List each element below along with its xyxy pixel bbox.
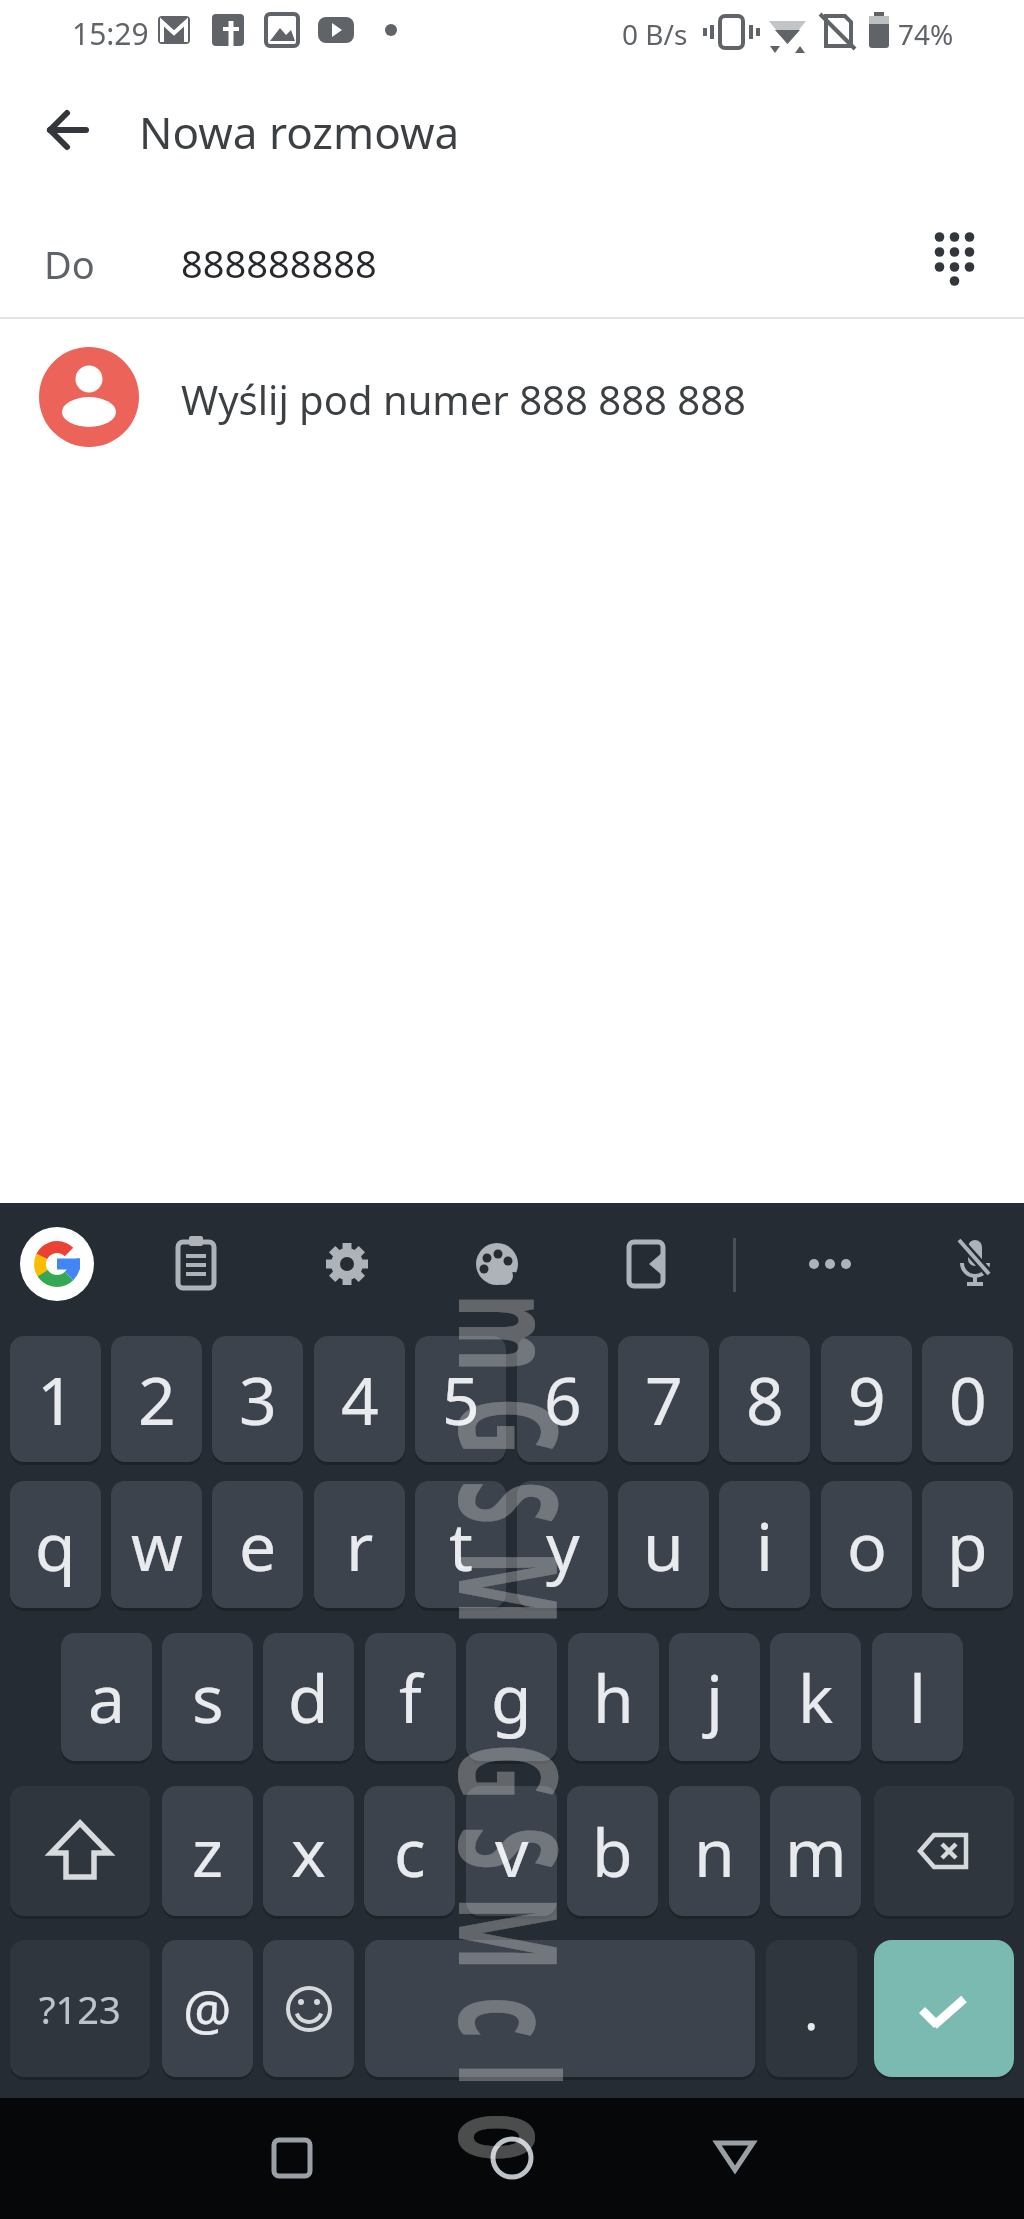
button[interactable]: [935, 1224, 1015, 1304]
button[interactable]: v: [466, 1786, 557, 1916]
button[interactable]: l: [872, 1633, 963, 1761]
staticText: q: [35, 1500, 76, 1590]
staticText: 1: [37, 1354, 75, 1444]
button[interactable]: j: [669, 1633, 760, 1761]
button[interactable]: u: [618, 1481, 709, 1608]
staticText: 9: [848, 1354, 886, 1444]
button[interactable]: 6: [517, 1336, 608, 1462]
staticText: f: [399, 1652, 422, 1742]
button[interactable]: k: [770, 1633, 861, 1761]
button[interactable]: .: [766, 1940, 857, 2077]
button[interactable]: r: [314, 1481, 405, 1608]
button[interactable]: [156, 1224, 236, 1304]
button[interactable]: 9: [821, 1336, 912, 1462]
button[interactable]: x: [263, 1786, 354, 1916]
button[interactable]: m: [770, 1786, 861, 1916]
button[interactable]: [252, 2118, 332, 2198]
button[interactable]: h: [568, 1633, 659, 1761]
button[interactable]: 0: [922, 1336, 1013, 1462]
staticText: ?123: [39, 1983, 121, 2035]
button[interactable]: y: [517, 1481, 608, 1608]
button[interactable]: 4: [314, 1336, 405, 1462]
button[interactable]: 8: [719, 1336, 810, 1462]
button[interactable]: s: [162, 1633, 253, 1761]
button[interactable]: w: [111, 1481, 202, 1608]
staticText: e: [239, 1500, 277, 1590]
button[interactable]: c: [364, 1786, 455, 1916]
staticText: Nowa rozmowa: [139, 102, 460, 162]
staticText: l: [909, 1652, 927, 1742]
button[interactable]: q: [10, 1481, 101, 1608]
staticText: m: [785, 1806, 847, 1896]
button[interactable]: [790, 1224, 870, 1304]
button[interactable]: ?123: [10, 1940, 150, 2077]
staticText: s: [192, 1652, 224, 1742]
button[interactable]: [900, 205, 1008, 313]
button[interactable]: [263, 1940, 354, 2077]
staticText: y: [546, 1500, 580, 1590]
button[interactable]: [10, 1786, 150, 1916]
staticText: k: [798, 1652, 834, 1742]
staticText: i: [756, 1500, 774, 1590]
staticText: v: [495, 1806, 529, 1896]
button[interactable]: z: [162, 1786, 253, 1916]
staticText: 2: [138, 1354, 176, 1444]
staticText: Wyślij pod numer 888 888 888: [181, 372, 746, 426]
staticText: p: [947, 1500, 988, 1590]
staticText: r: [346, 1500, 374, 1590]
staticText: b: [592, 1806, 633, 1896]
staticText: 0: [949, 1354, 987, 1444]
staticText: n: [694, 1806, 735, 1896]
button[interactable]: o: [821, 1481, 912, 1608]
button[interactable]: [365, 1940, 755, 2077]
staticText: w: [131, 1500, 183, 1590]
button[interactable]: a: [61, 1633, 152, 1761]
staticText: 74%: [898, 15, 954, 53]
button[interactable]: i: [719, 1481, 810, 1608]
button[interactable]: [695, 2118, 775, 2198]
staticText: g: [491, 1652, 532, 1742]
button[interactable]: [874, 1786, 1014, 1916]
button[interactable]: 3: [212, 1336, 303, 1462]
staticText: 7: [645, 1354, 683, 1444]
staticText: 0 B/s: [622, 15, 688, 53]
button[interactable]: [605, 1224, 685, 1304]
button[interactable]: [457, 1224, 537, 1304]
staticText: j: [706, 1652, 724, 1742]
staticText: 4: [341, 1354, 379, 1444]
button[interactable]: 5: [415, 1336, 506, 1462]
staticText: c: [394, 1806, 426, 1896]
staticText: 3: [239, 1354, 277, 1444]
button[interactable]: b: [567, 1786, 658, 1916]
button[interactable]: [472, 2118, 552, 2198]
staticText: u: [643, 1500, 684, 1590]
button[interactable]: 1: [10, 1336, 101, 1462]
staticText: Do: [44, 238, 95, 290]
button[interactable]: [307, 1224, 387, 1304]
button[interactable]: @: [162, 1940, 253, 2077]
staticText: d: [288, 1652, 329, 1742]
button[interactable]: e: [212, 1481, 303, 1608]
button[interactable]: Do: [0, 200, 1024, 317]
button[interactable]: 2: [111, 1336, 202, 1462]
button[interactable]: t: [415, 1481, 506, 1608]
staticText: @: [183, 1972, 232, 2046]
button[interactable]: Wyślij pod numer 888 888 888: [0, 330, 1024, 464]
button[interactable]: g: [466, 1633, 557, 1761]
staticText: .: [804, 1972, 819, 2046]
staticText: 5: [442, 1354, 480, 1444]
button[interactable]: 7: [618, 1336, 709, 1462]
staticText: h: [593, 1652, 634, 1742]
staticText: a: [88, 1652, 126, 1742]
staticText: z: [192, 1806, 224, 1896]
button[interactable]: [28, 90, 108, 170]
staticText: 8: [746, 1354, 784, 1444]
staticText: 15:29: [72, 13, 149, 54]
button[interactable]: [20, 1227, 94, 1301]
button[interactable]: n: [669, 1786, 760, 1916]
button[interactable]: p: [922, 1481, 1013, 1608]
button[interactable]: f: [365, 1633, 456, 1761]
button[interactable]: d: [263, 1633, 354, 1761]
staticText: t: [449, 1500, 473, 1590]
button[interactable]: [874, 1940, 1014, 2077]
